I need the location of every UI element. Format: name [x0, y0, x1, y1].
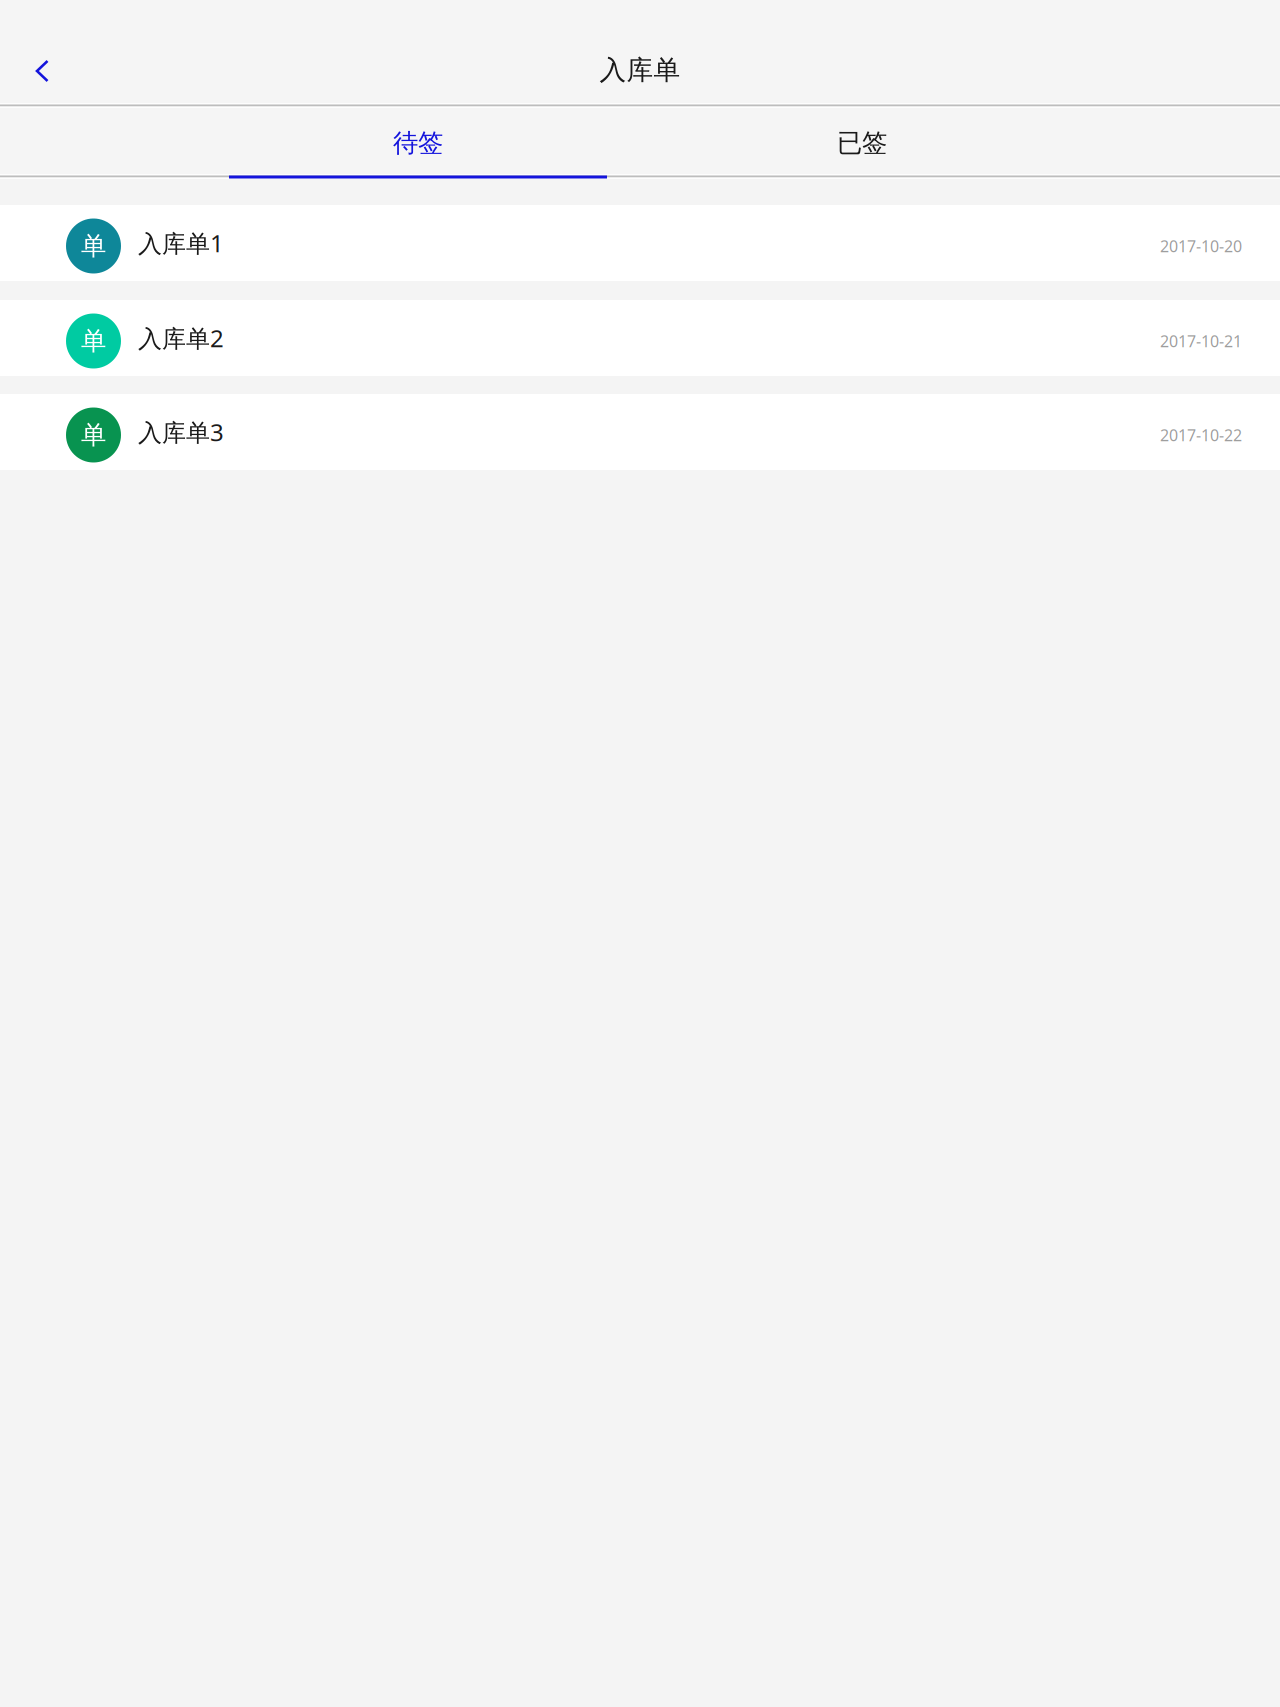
- staticText: 已签: [837, 127, 887, 158]
- button[interactable]: 单: [0, 205, 1280, 281]
- staticText: 2017-10-22: [1160, 424, 1242, 446]
- staticText: 2017-10-20: [1160, 235, 1242, 257]
- button[interactable]: 单: [0, 394, 1280, 470]
- staticText: 单: [81, 325, 106, 356]
- staticText: 单: [81, 419, 106, 450]
- staticText: 2017-10-21: [1160, 330, 1242, 352]
- staticText: 待签: [393, 127, 443, 158]
- button[interactable]: 待签: [196, 108, 640, 174]
- staticText: 入库单1: [138, 227, 224, 259]
- staticText: 单: [81, 230, 106, 261]
- button[interactable]: 单: [0, 300, 1280, 376]
- button[interactable]: 已签: [640, 108, 1084, 174]
- staticText: 入库单3: [138, 416, 224, 448]
- button[interactable]: Back: [11, 39, 73, 101]
- staticText: 入库单2: [138, 322, 224, 354]
- staticText: 入库单: [599, 54, 680, 86]
